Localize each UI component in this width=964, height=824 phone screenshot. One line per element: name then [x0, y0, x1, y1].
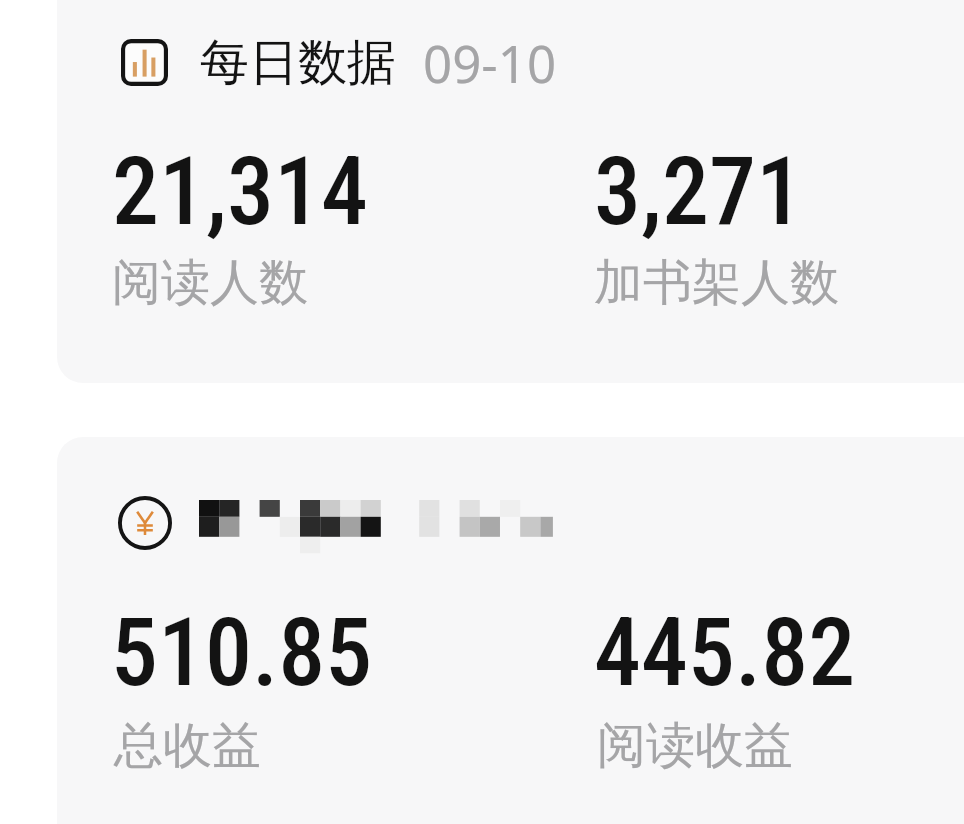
- staticText: 09-10: [423, 28, 557, 97]
- staticText: 阅读人数: [112, 252, 308, 314]
- staticText: 阅读收益: [597, 715, 793, 777]
- staticText: 3,271: [594, 137, 803, 247]
- button[interactable]: Daily statistics: [57, 0, 964, 383]
- button[interactable]: Daily statistics: [121, 28, 557, 97]
- button[interactable]: Earnings: [57, 437, 964, 824]
- button[interactable]: Earnings: [118, 496, 172, 550]
- button[interactable]: [97, 589, 537, 779]
- other: Daily statistics: [121, 39, 168, 86]
- staticText: 每日数据: [200, 32, 396, 94]
- button[interactable]: [579, 589, 964, 779]
- staticText: 21,314: [112, 137, 368, 247]
- staticText: 总收益: [114, 715, 261, 777]
- staticText: 加书架人数: [594, 252, 839, 314]
- staticText: 445.82: [594, 598, 856, 708]
- staticText: 510.85: [111, 598, 373, 708]
- button[interactable]: [579, 129, 964, 319]
- button[interactable]: [97, 129, 537, 319]
